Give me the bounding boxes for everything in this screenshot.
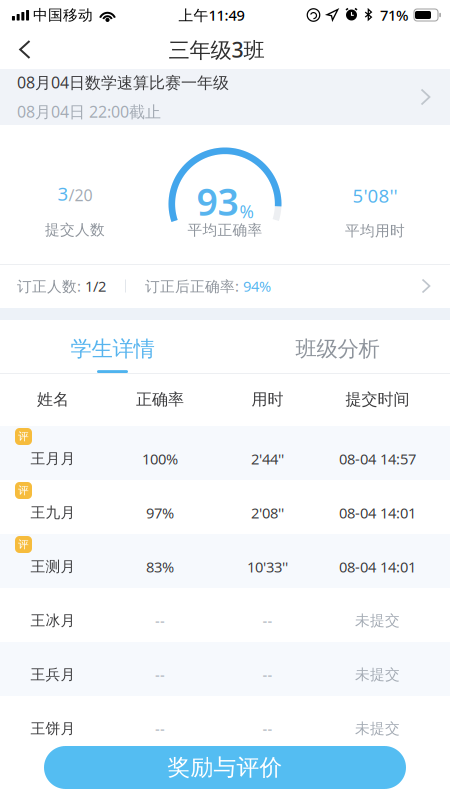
staticText: 提交人数 [45, 221, 105, 239]
button[interactable]: 班级分析 [225, 320, 450, 373]
staticText: 94% [239, 276, 271, 296]
staticText: 93 [196, 176, 238, 226]
staticText: 上午11:49 [178, 5, 244, 25]
staticText: 97% [146, 503, 174, 522]
staticText: 订正人数: [17, 276, 81, 296]
staticText: 08-04 14:57 [339, 449, 416, 468]
staticText: 王月月 [30, 450, 75, 468]
staticText: -- [262, 665, 272, 684]
staticText: 83% [146, 557, 174, 576]
staticText: 2'44'' [251, 449, 284, 468]
staticText: 08-04 14:01 [339, 503, 416, 522]
staticText: 71% [380, 5, 408, 25]
staticText: 王测月 [30, 558, 75, 576]
button[interactable]: 订正人数: [0, 264, 450, 308]
staticText: 08月04日 22:00截止 [17, 101, 161, 122]
staticText: 正确率 [136, 390, 184, 409]
button[interactable]: 王月月 [0, 426, 450, 480]
staticText: -- [262, 611, 272, 630]
staticText: 3 [57, 181, 68, 206]
button[interactable]: 王测月 [0, 534, 450, 588]
staticText: 未提交 [355, 720, 400, 738]
button[interactable]: 奖励与评价 [44, 746, 406, 789]
staticText: 评 [18, 538, 29, 551]
staticText: % [239, 200, 253, 223]
button[interactable]: 王九月 [0, 480, 450, 534]
staticText: -- [155, 719, 165, 738]
staticText: 王九月 [30, 504, 75, 522]
staticText: 评 [18, 430, 29, 443]
staticText: 未提交 [355, 666, 400, 684]
staticText: 10'33'' [247, 557, 288, 576]
staticText: 5'08'' [352, 183, 397, 208]
staticText: 学生详情 [70, 336, 154, 362]
staticText: 提交时间 [345, 390, 409, 409]
staticText: -- [155, 611, 165, 630]
staticText: -- [155, 665, 165, 684]
staticText: 王冰月 [30, 612, 75, 630]
staticText: 2'08'' [251, 503, 284, 522]
staticText: 评 [18, 484, 29, 497]
staticText: 用时 [251, 390, 283, 409]
button[interactable]: 学生详情 [0, 320, 225, 373]
staticText: 未提交 [355, 612, 400, 630]
staticText: 08月04日数学速算比赛一年级 [17, 72, 229, 93]
staticText: -- [262, 719, 272, 738]
staticText: 王兵月 [30, 666, 75, 684]
staticText: 订正后正确率: [145, 276, 239, 296]
staticText: 08-04 14:01 [339, 557, 416, 576]
staticText: 平均用时 [345, 222, 405, 240]
button[interactable]: 返回 [0, 30, 49, 69]
staticText: 王饼月 [30, 720, 75, 738]
staticText: /20 [68, 184, 92, 206]
button[interactable]: 08月04日数学速算比赛一年级 [0, 69, 450, 125]
button[interactable]: 王兵月 [0, 642, 450, 696]
staticText: 奖励与评价 [167, 754, 282, 781]
staticText: 姓名 [37, 390, 69, 409]
staticText: 平均正确率 [187, 221, 262, 239]
staticText: 100% [142, 449, 178, 468]
staticText: 中国移动 [33, 6, 93, 24]
staticText: 班级分析 [295, 336, 379, 362]
button[interactable]: 王饼月 [0, 696, 450, 750]
staticText: 1/2 [81, 276, 106, 296]
button[interactable]: 王冰月 [0, 588, 450, 642]
staticText: 三年级3班 [168, 35, 264, 64]
